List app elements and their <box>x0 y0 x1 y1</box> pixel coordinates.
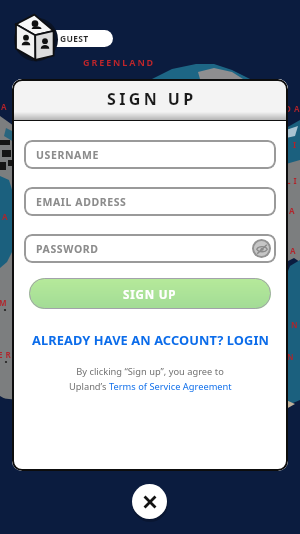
staticText: SIGN UP <box>107 88 197 110</box>
staticText: SIGN UP <box>123 287 177 303</box>
staticText: A <box>2 211 9 222</box>
staticText: D A <box>285 103 300 114</box>
button[interactable]: Close <box>132 484 167 519</box>
staticText: A <box>1 101 8 112</box>
staticText: A <box>289 205 296 216</box>
button[interactable]: USERNAME <box>24 140 276 169</box>
staticText: GUEST <box>60 33 89 45</box>
staticText: By clicking “Sign up”, you agree to <box>12 365 288 378</box>
staticText: USERNAME <box>36 148 99 162</box>
staticText: GREENLAND <box>83 56 156 68</box>
staticText: ALREADY HAVE AN ACCOUNT? LOGIN <box>32 331 269 348</box>
button[interactable]: SIGN UP <box>29 278 271 309</box>
button[interactable]: EMAIL ADDRESS <box>24 187 276 216</box>
button[interactable]: PASSWORD <box>24 234 276 263</box>
staticText: L I <box>286 175 298 186</box>
button[interactable]: ALREADY HAVE AN ACCOUNT? LOGIN <box>12 331 288 348</box>
button[interactable]: Guest profile <box>12 12 60 60</box>
button[interactable]: GUEST <box>42 30 113 47</box>
staticText: M <box>0 297 8 308</box>
staticText: I <box>293 139 297 150</box>
staticText: N <box>287 351 295 362</box>
staticText: EMAIL ADDRESS <box>36 195 127 209</box>
button[interactable]: Terms of Service Agreement <box>109 380 232 393</box>
staticText: Upland’s <box>69 380 109 393</box>
staticText: E R <box>0 349 12 360</box>
staticText: A <box>290 245 297 256</box>
button[interactable]: Show password <box>252 239 271 258</box>
staticText: PASSWORD <box>36 242 99 256</box>
staticText: N <box>291 319 299 330</box>
